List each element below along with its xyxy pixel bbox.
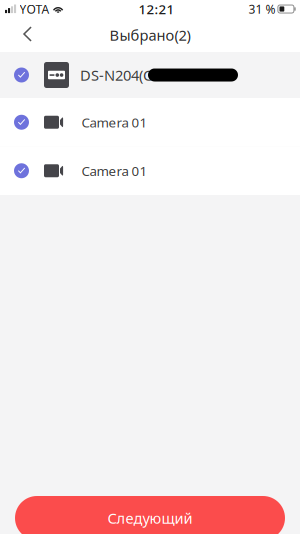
- staticText: Выбрано(2): [109, 25, 190, 45]
- staticText: Следующий: [107, 508, 192, 528]
- button[interactable]: Camera 01: [0, 98, 300, 146]
- staticText: Camera 01: [81, 113, 147, 131]
- staticText: Camera 01: [81, 162, 147, 180]
- staticText: 31 %: [248, 1, 275, 17]
- staticText: DS-N204(C: [80, 65, 152, 85]
- staticText: YOTA: [19, 1, 49, 17]
- button[interactable]: Back: [0, 21, 46, 49]
- button[interactable]: DS-N204(C: [0, 52, 300, 98]
- button[interactable]: Camera 01: [0, 146, 300, 195]
- staticText: 12:21: [138, 0, 174, 18]
- button[interactable]: Следующий: [15, 496, 285, 534]
